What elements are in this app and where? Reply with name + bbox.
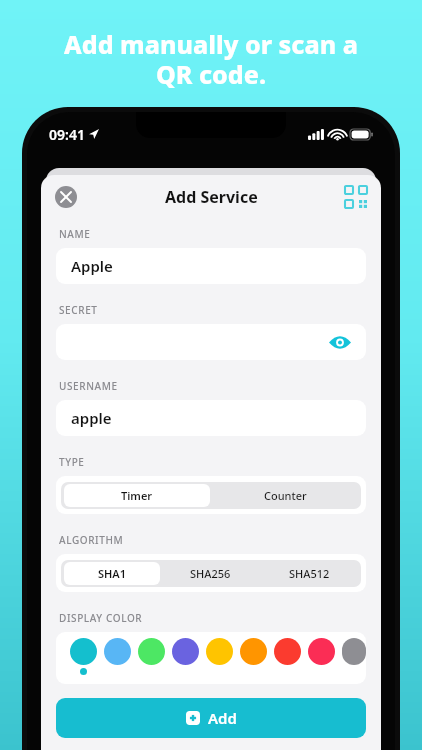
button[interactable]: Color 4 bbox=[206, 638, 233, 665]
button[interactable]: SHA256 bbox=[162, 562, 259, 585]
staticText: Counter bbox=[264, 488, 307, 503]
staticText: Timer bbox=[121, 488, 153, 503]
button[interactable]: SHA1 bbox=[64, 562, 160, 585]
staticText: USERNAME bbox=[59, 379, 118, 393]
staticText: apple bbox=[71, 408, 112, 428]
button[interactable]: Color 7 bbox=[308, 638, 335, 665]
staticText: NAME bbox=[59, 227, 91, 241]
button[interactable]: Color 8 bbox=[342, 638, 366, 665]
staticText: SECRET bbox=[59, 303, 98, 317]
staticText: TYPE bbox=[59, 455, 85, 469]
staticText: ALGORITHM bbox=[59, 533, 124, 547]
button[interactable]: Color 0 bbox=[70, 638, 97, 665]
staticText: SHA1 bbox=[98, 566, 127, 581]
button[interactable]: SHA512 bbox=[261, 562, 358, 585]
staticText: Apple bbox=[71, 256, 113, 276]
button[interactable]: Timer bbox=[64, 484, 210, 507]
button[interactable]: Apple bbox=[56, 248, 366, 284]
staticText: SHA256 bbox=[190, 566, 231, 581]
button[interactable]: Color 5 bbox=[240, 638, 267, 665]
staticText: Add bbox=[208, 708, 237, 728]
staticText: 09:41 bbox=[49, 125, 85, 144]
staticText: DISPLAY COLOR bbox=[59, 611, 143, 625]
staticText: SHA512 bbox=[289, 566, 330, 581]
button[interactable]: Close bbox=[55, 186, 77, 208]
button[interactable]: Counter bbox=[212, 484, 358, 507]
button[interactable]: Show secret bbox=[329, 331, 351, 353]
staticText: Add manually or scan a QR code. bbox=[0, 27, 422, 92]
button[interactable]: Color 3 bbox=[172, 638, 199, 665]
button[interactable]: Show secret bbox=[56, 324, 366, 360]
button[interactable]: Add bbox=[56, 698, 366, 738]
button[interactable]: Color 6 bbox=[274, 638, 301, 665]
staticText: Add Service bbox=[165, 186, 258, 208]
button[interactable]: Color 1 bbox=[104, 638, 131, 665]
button[interactable]: apple bbox=[56, 400, 366, 436]
button[interactable]: Color 2 bbox=[138, 638, 165, 665]
button[interactable]: Scan QR code bbox=[345, 186, 367, 208]
